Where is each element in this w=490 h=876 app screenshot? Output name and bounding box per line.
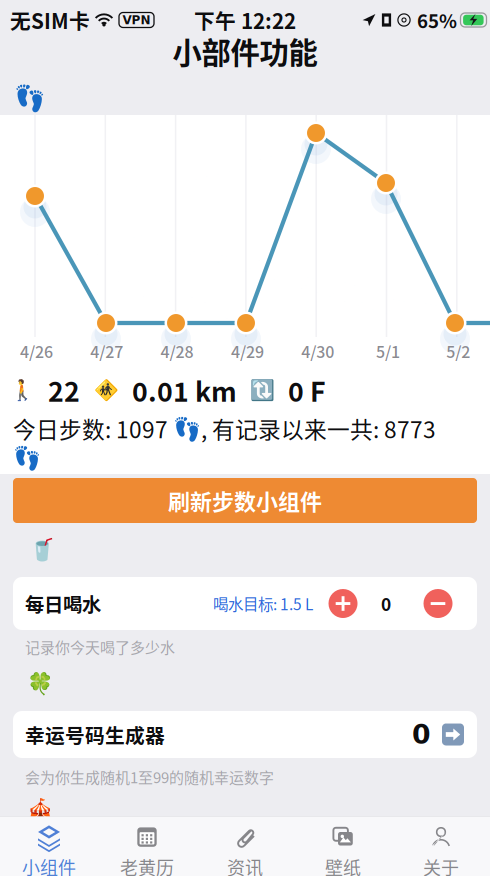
staticText: 🥤 (29, 537, 56, 562)
staticText: 4/29 (231, 339, 264, 363)
button[interactable]: 小组件 (0, 816, 98, 876)
staticText: 0 (412, 719, 431, 750)
button[interactable]: 减少喝水 (416, 577, 460, 630)
staticText: 小部件功能 (172, 30, 317, 72)
staticText: 下午 12:22 (194, 5, 296, 35)
staticText: 4/26 (20, 339, 53, 363)
button[interactable]: 壁纸 (294, 816, 392, 876)
button[interactable]: 老黄历 (98, 816, 196, 876)
staticText: 0 (381, 591, 391, 616)
staticText: 壁纸 (325, 854, 361, 876)
staticText: 4/28 (161, 339, 194, 363)
button[interactable]: 增加喝水 (321, 577, 365, 630)
staticText: 幸运号码生成器 (25, 720, 165, 749)
staticText: 会为你生成随机1至99的随机幸运数字 (25, 766, 274, 788)
staticText: 刷新步数小组件 (168, 485, 322, 516)
staticText: 喝水目标: 1.5 L (213, 592, 313, 615)
staticText: 每日喝水 (25, 589, 101, 617)
staticText: 🍀 (27, 671, 54, 696)
staticText: 无SIM卡 (10, 5, 90, 35)
staticText: 65% (417, 6, 457, 33)
staticText: 资讯 (227, 854, 263, 876)
staticText: 记录你今天喝了多少水 (25, 636, 175, 658)
staticText: 🚶 (10, 378, 35, 402)
staticText: 22 (48, 371, 80, 409)
staticText: 4/30 (301, 339, 334, 363)
button[interactable]: 生成幸运号码 (431, 723, 464, 745)
staticText: 5/1 (376, 339, 400, 363)
staticText: 🎪 (27, 797, 54, 822)
staticText: 0.01 km (132, 371, 237, 409)
staticText: 5/2 (446, 339, 470, 363)
staticText: 👣 (14, 83, 46, 113)
staticText: VPN (122, 13, 150, 27)
button[interactable]: 资讯 (196, 816, 294, 876)
staticText: 0 F (288, 371, 326, 409)
staticText: 老黄历 (120, 854, 174, 876)
staticText: 4/27 (90, 339, 123, 363)
staticText: 🚸 (94, 378, 119, 402)
staticText: 小组件 (22, 854, 76, 876)
staticText: 关于 (423, 854, 459, 876)
button[interactable]: 关于 (392, 816, 490, 876)
staticText: 🔃 (250, 378, 275, 402)
staticText: 今日步数: 1097 👣, 有记录以来一共: 8773 👣 (13, 412, 436, 471)
button[interactable]: 刷新步数小组件 (13, 478, 477, 523)
